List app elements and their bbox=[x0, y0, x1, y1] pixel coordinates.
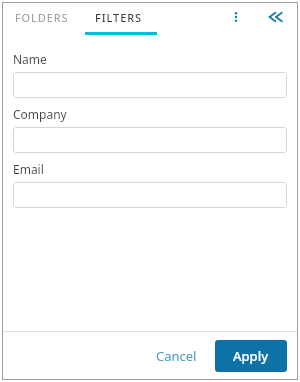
button[interactable]: FILTERS bbox=[93, 2, 144, 32]
staticText: Apply bbox=[233, 347, 269, 365]
staticText: Cancel bbox=[156, 347, 197, 365]
staticText: Email bbox=[13, 161, 44, 177]
button[interactable]: Cancel bbox=[144, 340, 209, 372]
button[interactable]: Apply bbox=[215, 340, 287, 372]
button[interactable]: More options bbox=[222, 3, 250, 31]
staticText: FILTERS bbox=[95, 10, 142, 25]
button[interactable] bbox=[13, 72, 287, 98]
staticText: Company bbox=[13, 106, 67, 122]
button[interactable]: FOLDERS bbox=[13, 2, 71, 32]
staticText: Name bbox=[13, 51, 47, 67]
button[interactable] bbox=[13, 182, 287, 208]
button[interactable]: Collapse bbox=[262, 3, 290, 31]
button[interactable] bbox=[13, 127, 287, 153]
staticText: FOLDERS bbox=[15, 10, 69, 25]
